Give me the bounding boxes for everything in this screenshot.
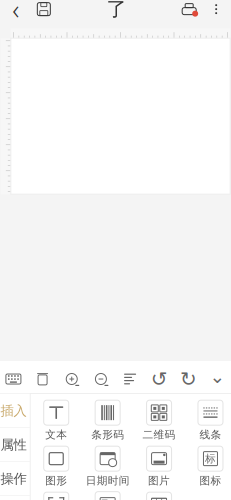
staticText: 标: [205, 452, 216, 465]
button[interactable]: Align: [115, 366, 145, 392]
button[interactable]: 属性: [0, 428, 30, 462]
button[interactable]: 二维码: [133, 398, 185, 444]
button[interactable]: 图形: [30, 444, 82, 490]
staticText: ⌄: [210, 366, 226, 387]
staticText: 操作: [1, 470, 27, 487]
button[interactable]: 标: [185, 444, 231, 490]
button[interactable]: 识别: [30, 490, 82, 500]
staticText: 条形码: [91, 428, 124, 441]
button[interactable]: More: [204, 0, 228, 23]
button[interactable]: 操作: [0, 462, 30, 496]
staticText: 了: [106, 0, 126, 21]
staticText: 线条: [199, 428, 221, 441]
button[interactable]: Keyboard: [0, 366, 28, 392]
button[interactable]: Excel: [82, 490, 133, 500]
button[interactable]: 插入: [0, 394, 30, 428]
button[interactable]: Collapse: [203, 366, 231, 392]
staticText: 图片: [148, 474, 170, 487]
staticText: ↻: [180, 368, 197, 390]
staticText: 插入: [1, 402, 27, 419]
button[interactable]: Back: [3, 0, 29, 23]
button[interactable]: 日期时间: [82, 444, 133, 490]
staticText: ↺: [151, 368, 168, 390]
button[interactable]: 图片: [133, 444, 185, 490]
button[interactable]: Zoom in: [57, 366, 86, 392]
staticText: 图形: [45, 474, 67, 487]
button[interactable]: Redo: [174, 366, 203, 392]
button[interactable]: Save: [29, 0, 59, 23]
staticText: 图标: [199, 474, 221, 487]
button[interactable]: 线条: [185, 398, 231, 444]
button[interactable]: Undo: [145, 366, 174, 392]
staticText: 属性: [1, 436, 27, 453]
staticText: ‹: [12, 0, 19, 27]
staticText: 文本: [45, 428, 67, 441]
button[interactable]: Delete: [28, 366, 57, 392]
button[interactable]: 表格: [133, 490, 185, 500]
staticText: 二维码: [143, 428, 176, 441]
button[interactable]: Zoom out: [86, 366, 115, 392]
staticText: 日期时间: [86, 474, 130, 487]
button[interactable]: 条形码: [82, 398, 133, 444]
button[interactable]: Print: [174, 0, 204, 23]
button[interactable]: 文本: [30, 398, 82, 444]
